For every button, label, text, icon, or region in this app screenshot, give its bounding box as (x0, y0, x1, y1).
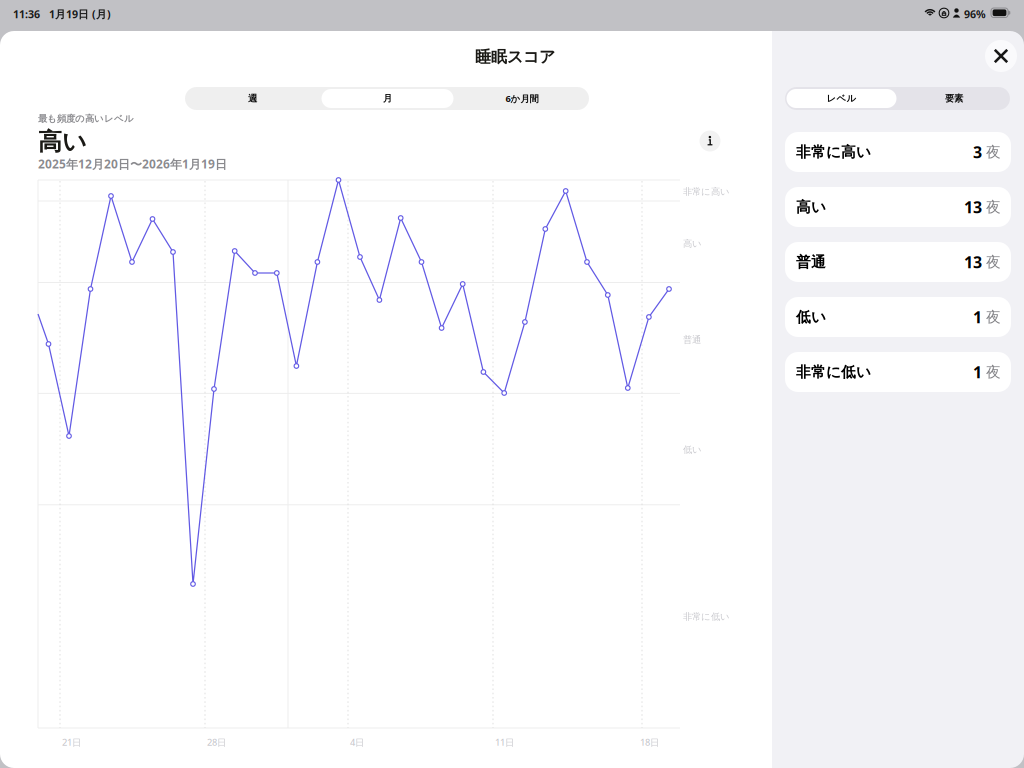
staticText: 普通 (683, 334, 701, 345)
button[interactable]: レベル (785, 87, 898, 110)
button[interactable]: 普通 (785, 242, 1011, 282)
staticText: 低い (796, 308, 826, 326)
staticText: 睡眠スコア (475, 47, 555, 67)
staticText: 非常に高い (683, 186, 730, 197)
staticText: 4日 (350, 736, 364, 748)
button[interactable]: 高い (785, 187, 1011, 227)
staticText: 非常に低い (683, 611, 730, 622)
staticText: 3 (973, 141, 982, 163)
staticText: 1 (973, 306, 982, 328)
staticText: 高い (38, 127, 87, 156)
staticText: レベル (826, 93, 856, 104)
staticText: 13 (964, 251, 982, 273)
button[interactable]: 低い (785, 297, 1011, 337)
staticText: 週 (248, 93, 257, 104)
staticText: 非常に高い (796, 143, 871, 161)
button[interactable]: 週 (185, 87, 320, 110)
staticText: 普通 (796, 253, 826, 271)
staticText: 非常に低い (796, 363, 871, 381)
staticText: 96% (964, 7, 986, 21)
staticText: 1 (973, 361, 982, 383)
staticText: 28日 (207, 736, 226, 748)
button[interactable]: 詳細情報 (697, 128, 723, 154)
staticText: 要素 (945, 93, 963, 104)
staticText: 夜 (982, 363, 1001, 381)
button[interactable]: 非常に低い (785, 352, 1011, 392)
button[interactable]: 閉じる (981, 36, 1021, 76)
staticText: 最も頻度の高いレベル (38, 113, 134, 124)
staticText: 夜 (982, 198, 1001, 216)
staticText: 2025年12月20日〜2026年1月19日 (38, 156, 227, 172)
staticText: 18日 (640, 736, 659, 748)
staticText: 低い (683, 444, 702, 455)
staticText: 月 (383, 93, 392, 104)
button[interactable]: 要素 (898, 87, 1010, 110)
staticText: 6か月間 (505, 92, 538, 105)
staticText: 13 (964, 196, 982, 218)
staticText: 高い (796, 198, 826, 216)
staticText: 21日 (62, 736, 81, 748)
staticText: 11日 (495, 736, 514, 748)
button[interactable]: 非常に高い (785, 132, 1011, 172)
staticText: 夜 (982, 143, 1001, 161)
staticText: 夜 (982, 253, 1001, 271)
staticText: 夜 (982, 308, 1001, 326)
staticText: 11:36 1月19日 (月) (13, 7, 111, 21)
staticText: 高い (683, 238, 702, 249)
button[interactable]: 月 (320, 87, 455, 110)
button[interactable]: 6か月間 (455, 87, 589, 110)
